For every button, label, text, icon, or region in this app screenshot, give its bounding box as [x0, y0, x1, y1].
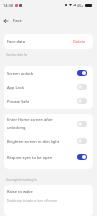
staticText: Require eyes to be open	[7, 155, 61, 160]
staticText: 4G+	[77, 3, 84, 7]
staticText: Use face data for	[6, 53, 28, 57]
button[interactable]: Off	[77, 98, 87, 104]
staticText: Delete	[73, 39, 86, 44]
button[interactable]: Private Safe	[4, 94, 93, 108]
button[interactable]: Back	[1, 16, 11, 26]
staticText: Double-tap to wake or turn off screen	[7, 199, 58, 203]
staticText: Face data	[7, 39, 73, 44]
button[interactable]: App Lock	[4, 80, 93, 94]
staticText: Enter Home screen after unlocking	[7, 117, 61, 130]
staticText: Private Safe	[7, 99, 61, 104]
button[interactable]: On	[77, 154, 87, 160]
button[interactable]: Off	[77, 84, 87, 90]
staticText: App Lock	[7, 85, 61, 90]
staticText: Brighten screen in dim light	[7, 139, 61, 144]
staticText: 14:38	[3, 3, 13, 8]
staticText: Face	[13, 18, 22, 24]
button[interactable]: Screen unlock	[4, 66, 93, 80]
staticText: Screen unlock	[7, 71, 61, 76]
button[interactable]: Off	[77, 121, 87, 127]
staticText: You might be looking for	[6, 178, 38, 182]
button[interactable]: On	[77, 70, 87, 76]
button[interactable]: Raise to wake	[4, 185, 93, 203]
button[interactable]: Brighten screen in dim light	[4, 133, 93, 149]
button[interactable]: Require eyes to be open	[4, 149, 93, 165]
button[interactable]: Face data	[4, 34, 93, 49]
staticText: Raise to wake	[7, 189, 33, 194]
button[interactable]: Enter Home screen after unlocking	[4, 114, 93, 133]
button[interactable]: Off	[77, 138, 87, 144]
